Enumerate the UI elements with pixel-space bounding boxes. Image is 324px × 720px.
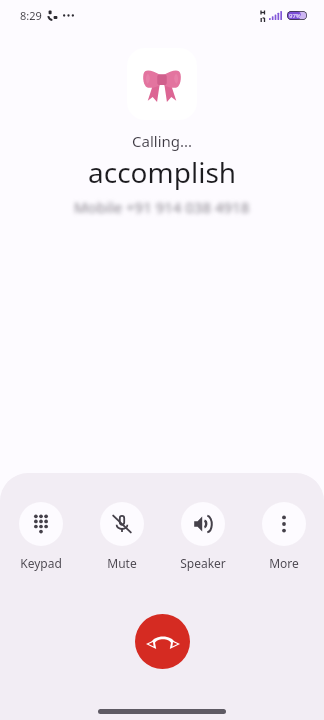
staticText: More xyxy=(269,555,299,571)
staticText: Speaker xyxy=(180,555,226,571)
staticText: Mute xyxy=(107,555,137,571)
staticText: Calling... xyxy=(132,131,193,151)
button[interactable]: End call xyxy=(135,614,190,669)
staticText: 97% xyxy=(289,12,301,20)
button[interactable]: Keypad xyxy=(0,502,81,571)
staticText: 8:29 xyxy=(20,8,42,23)
staticText: Keypad xyxy=(20,555,62,571)
staticText: accomplish xyxy=(88,153,237,191)
staticText: Mobile +91 914 038 4918 xyxy=(74,197,250,217)
button[interactable]: Speaker xyxy=(162,502,243,571)
button[interactable]: Mute xyxy=(81,502,162,571)
button[interactable]: More xyxy=(243,502,324,571)
